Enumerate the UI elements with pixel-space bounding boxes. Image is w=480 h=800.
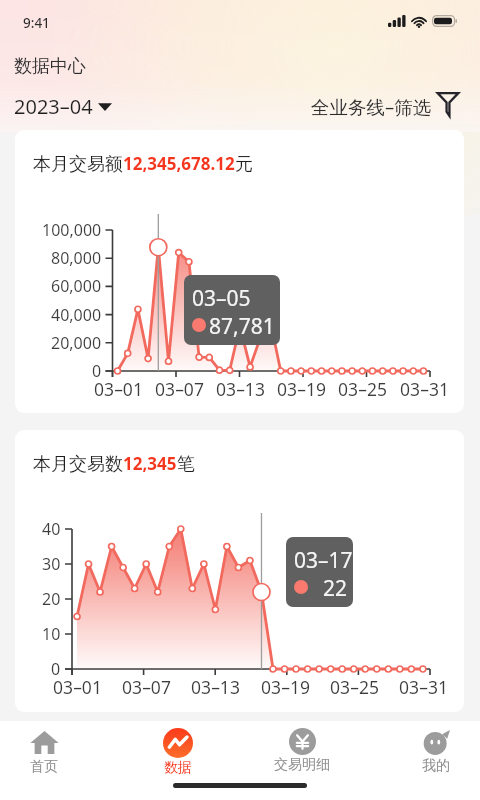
staticText: 9:41 — [23, 14, 50, 32]
staticText: 03–19 — [277, 377, 326, 401]
staticText: 本月交易额 — [33, 153, 123, 176]
staticText: 100,000 — [42, 219, 102, 241]
staticText: 本月交易数 — [33, 453, 123, 476]
staticText: 03–25 — [330, 675, 379, 699]
staticText: 12,345,678.12 — [123, 152, 235, 175]
staticText: 03–01 — [53, 675, 102, 699]
staticText: 10 — [42, 623, 61, 645]
staticText: 03–13 — [191, 675, 240, 699]
button[interactable]: 首页 — [6, 726, 82, 778]
button[interactable]: 本月交易数 — [15, 430, 464, 712]
staticText: 0 — [92, 360, 102, 382]
button[interactable]: 2023–04 — [14, 93, 112, 120]
staticText: 03–05 — [192, 284, 251, 313]
staticText: 03–07 — [122, 675, 171, 699]
staticText: 03–13 — [216, 377, 265, 401]
staticText: 全业务线–筛选 — [311, 94, 432, 119]
staticText: 80,000 — [51, 247, 102, 269]
staticText: 30 — [42, 553, 61, 575]
staticText: 笔 — [177, 453, 195, 476]
button[interactable]: 我的 — [398, 726, 474, 777]
other: 我的 — [422, 728, 450, 756]
staticText: 03–07 — [155, 377, 204, 401]
staticText: 03–31 — [400, 377, 449, 401]
staticText: 数据 — [164, 759, 192, 777]
button[interactable]: 交易明细 — [264, 726, 340, 776]
staticText: 20 — [42, 588, 61, 610]
staticText: 0 — [51, 658, 61, 680]
staticText: 03–17 — [294, 546, 353, 575]
staticText: 数据中心 — [14, 55, 86, 78]
staticText: 20,000 — [51, 332, 102, 354]
button[interactable]: 全业务线–筛选 — [311, 94, 459, 119]
staticText: 60,000 — [51, 275, 102, 297]
staticText: 03–19 — [261, 675, 310, 699]
staticText: 12,345 — [123, 452, 177, 475]
staticText: 03–31 — [399, 675, 448, 699]
staticText: 元 — [235, 153, 253, 176]
staticText: 40,000 — [51, 304, 102, 326]
other: 首页 — [30, 728, 59, 757]
staticText: 22 — [323, 574, 348, 603]
staticText: 03–25 — [338, 377, 387, 401]
button[interactable]: 数据 — [140, 726, 216, 779]
other: 交易明细 — [289, 728, 316, 755]
staticText: 我的 — [422, 757, 450, 775]
staticText: 首页 — [30, 758, 58, 776]
staticText: 03–01 — [94, 377, 143, 401]
button[interactable]: 本月交易额 — [15, 130, 464, 413]
staticText: 交易明细 — [274, 756, 330, 774]
staticText: 87,781 — [209, 312, 275, 341]
other: 数据 — [163, 728, 193, 758]
staticText: 2023–04 — [14, 93, 93, 120]
staticText: 40 — [42, 518, 61, 540]
